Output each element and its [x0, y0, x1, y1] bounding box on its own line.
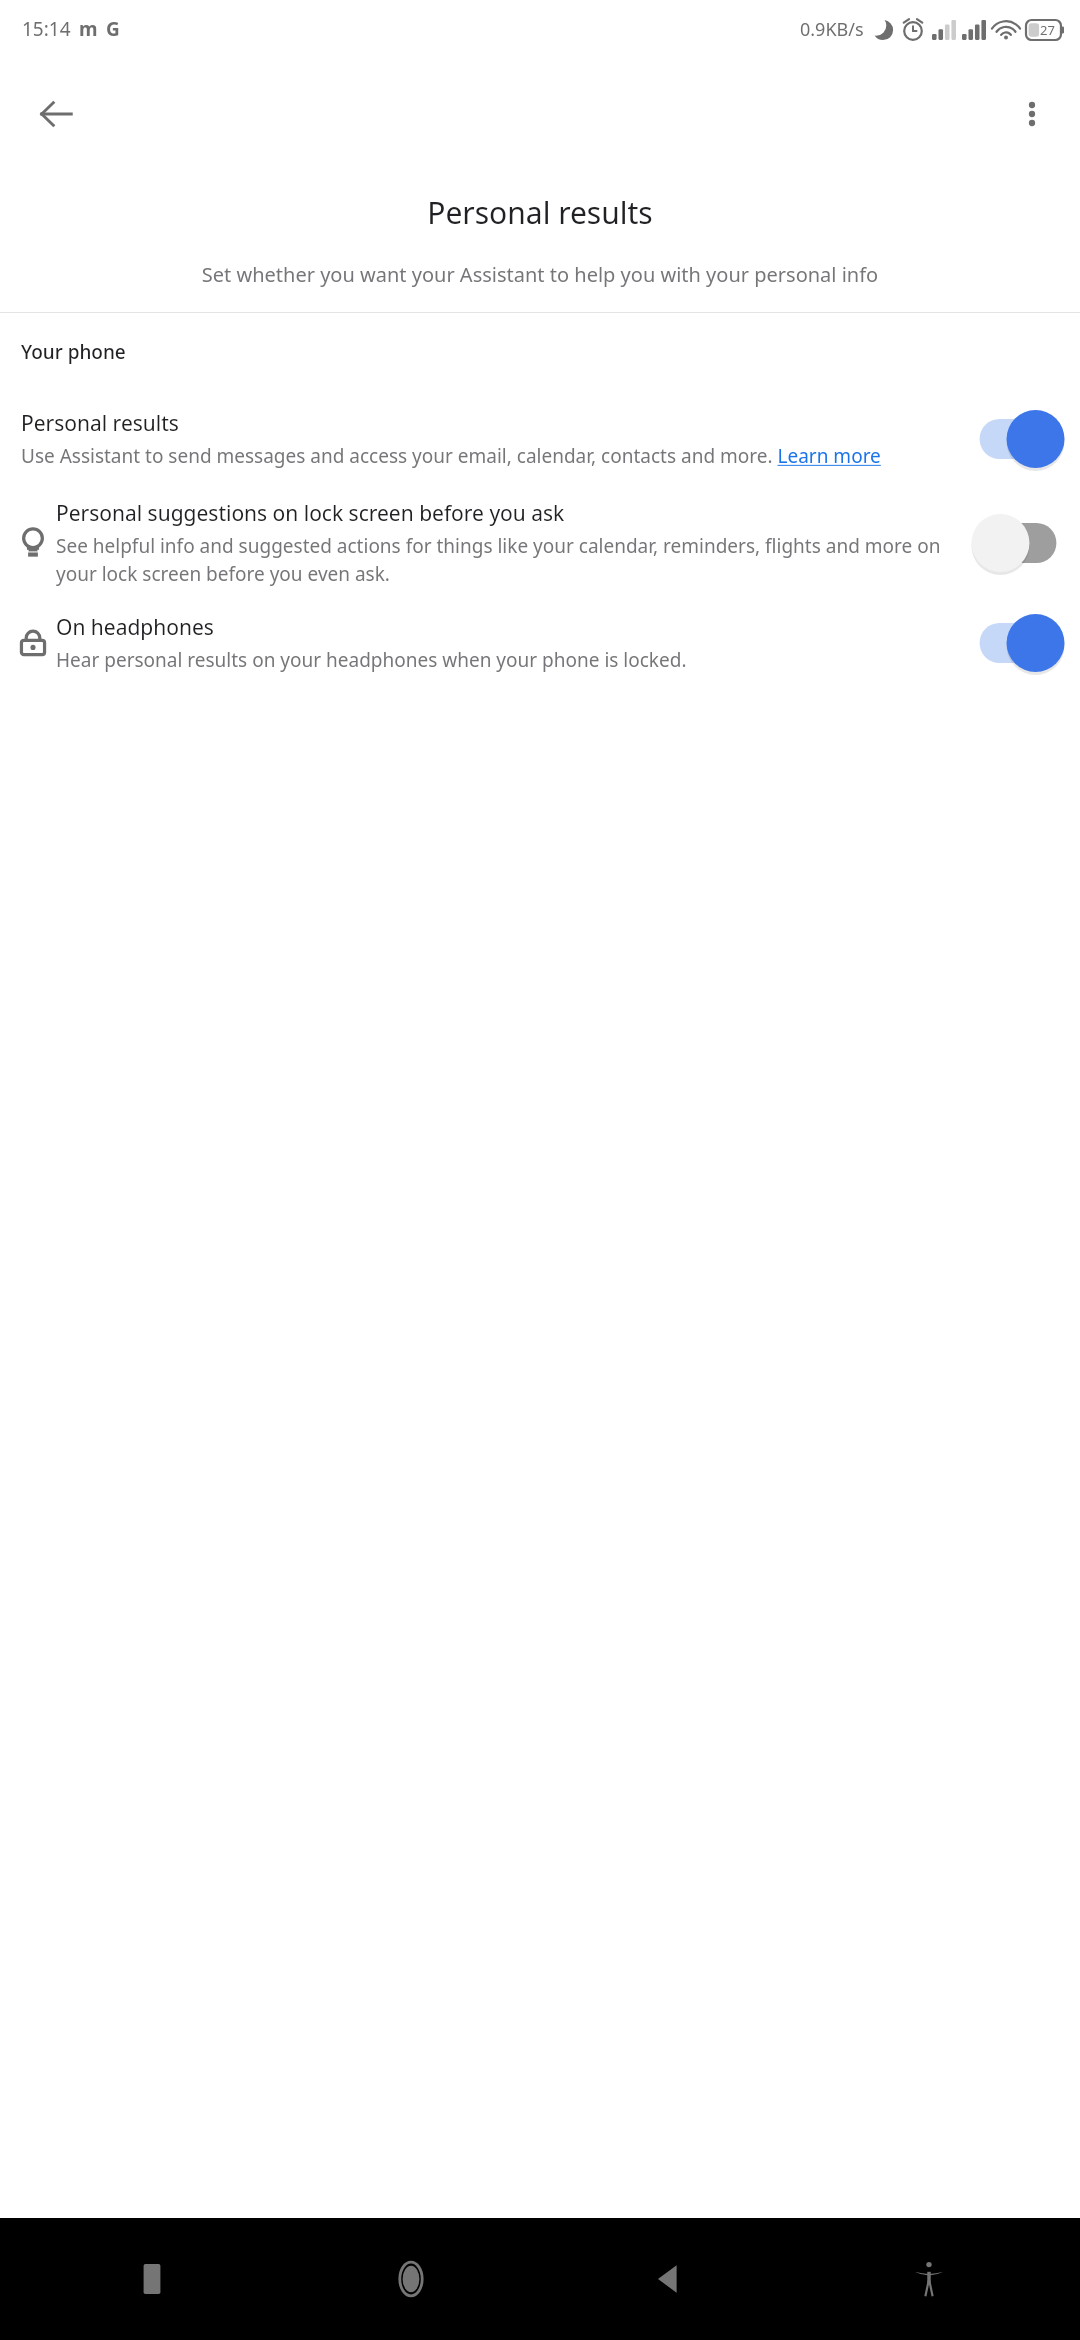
button[interactable]: Back [630, 2239, 710, 2319]
button[interactable]: More options [1000, 82, 1064, 146]
button[interactable]: Recent apps [112, 2239, 192, 2319]
staticText: Set whether you want your Assistant to h… [22, 261, 1058, 288]
staticText: See helpful info and suggested actions f… [56, 533, 943, 587]
button[interactable]: Toggle on [955, 614, 1080, 672]
staticText: Hear personal results on your headphones… [56, 647, 687, 673]
staticText: m [79, 16, 98, 42]
button[interactable]: Personal suggestions on lock screen befo… [0, 499, 1080, 587]
button[interactable]: Home [371, 2239, 451, 2319]
button[interactable]: Toggle off [955, 514, 1080, 572]
button[interactable]: Accessibility [889, 2239, 969, 2319]
staticText: 15:14 [22, 16, 71, 42]
staticText: Personal suggestions on lock screen befo… [56, 499, 565, 528]
staticText: Personal results [0, 192, 1080, 233]
button[interactable]: On headphones [0, 613, 1080, 673]
staticText: On headphones [56, 613, 214, 642]
button[interactable]: Personal results [0, 409, 1080, 469]
staticText: Personal results [21, 409, 179, 438]
staticText: 0.9KB/s [800, 17, 864, 42]
staticText: Your phone [21, 339, 126, 365]
staticText: 27 [1040, 21, 1055, 39]
staticText: G [106, 16, 120, 42]
staticText: Use Assistant to send messages and acces… [21, 443, 881, 469]
button[interactable]: Back [24, 82, 88, 146]
button[interactable]: Toggle on [955, 410, 1080, 468]
